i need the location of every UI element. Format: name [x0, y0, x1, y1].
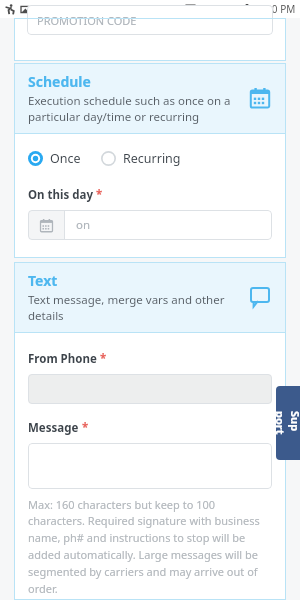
staticText: From Phone	[28, 351, 100, 367]
button[interactable]: PROMOTION CODE	[27, 5, 273, 35]
staticText: On this day	[28, 187, 96, 203]
staticText: Message	[28, 420, 82, 436]
staticText: 12:50 PM	[252, 2, 296, 16]
button[interactable]	[28, 443, 272, 489]
staticText: Schedule	[28, 72, 91, 91]
staticText: PROMOTION CODE	[37, 13, 137, 28]
staticText: Execution schedule such as once on a par…	[28, 93, 240, 124]
staticText: Recurring	[123, 150, 181, 167]
staticText: Once	[50, 150, 81, 167]
button[interactable]	[28, 374, 272, 404]
staticText: 74%	[222, 2, 242, 16]
staticText: *	[100, 351, 107, 367]
button[interactable]: Support	[276, 386, 300, 460]
button[interactable]: on	[28, 210, 272, 240]
staticText: *	[82, 420, 89, 436]
staticText: *	[96, 187, 103, 203]
staticText: Max: 160 characters but keep to 100 char…	[28, 497, 272, 597]
button[interactable]: Once	[28, 148, 81, 169]
staticText: Text	[28, 271, 58, 290]
staticText: Text message, merge vars and other detai…	[28, 292, 240, 323]
button[interactable]: Recurring	[101, 148, 181, 169]
staticText: Support	[276, 411, 300, 435]
staticText: on	[76, 217, 91, 233]
